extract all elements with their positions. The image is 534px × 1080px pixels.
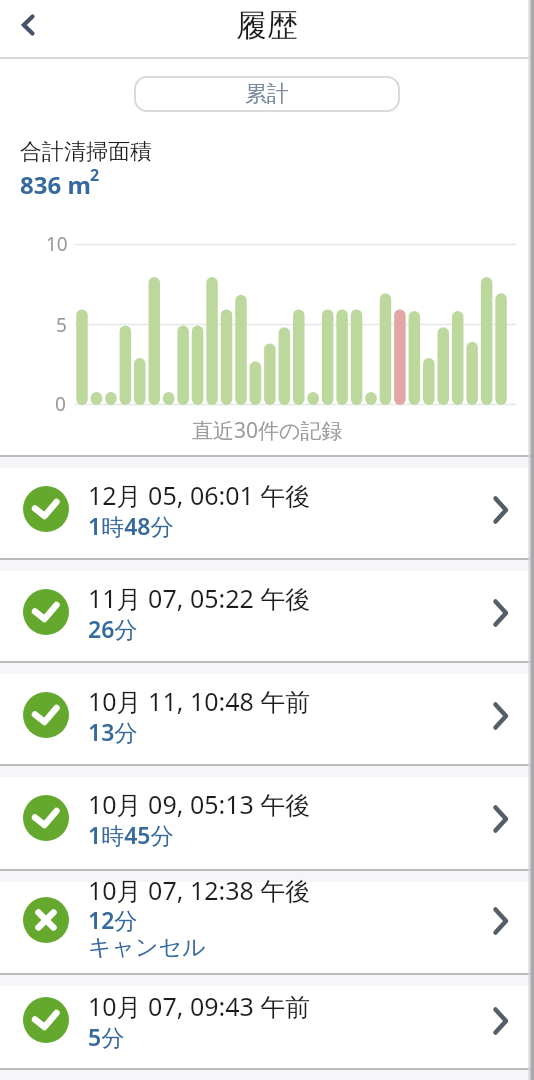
staticText: 5 [56, 312, 67, 338]
button[interactable]: 12月 05, 06:01 午後 [0, 457, 534, 558]
button[interactable]: 10月 11, 10:48 午前 [0, 663, 534, 764]
staticText: 直近30件の記録 [192, 416, 343, 444]
button[interactable]: 10月 07, 12:38 午後 [0, 869, 534, 973]
button[interactable]: 10月 07, 09:43 午前 [0, 975, 534, 1068]
staticText: 12月 05, 06:01 午後 [88, 478, 311, 512]
staticText: 11月 07, 05:22 午後 [88, 581, 311, 615]
staticText: 13分 [88, 716, 138, 746]
staticText: 1時45分 [88, 819, 174, 849]
button[interactable]: 10月 09, 05:13 午後 [0, 766, 534, 869]
staticText: 10月 11, 10:48 午前 [88, 684, 311, 718]
staticText: 10月 09, 05:13 午後 [88, 787, 311, 821]
staticText: 5分 [88, 1021, 125, 1051]
staticText: 履歴 [236, 6, 298, 45]
button[interactable] [0, 0, 56, 57]
button[interactable]: 11月 07, 05:22 午後 [0, 560, 534, 661]
button[interactable]: 累計 [134, 76, 400, 112]
staticText: 0 [55, 391, 66, 417]
staticText: 10月 07, 12:38 午後 [88, 873, 311, 907]
staticText: キャンセル [88, 933, 206, 961]
staticText: 836 m [20, 168, 91, 201]
staticText: 10 [46, 231, 68, 257]
staticText: 12分 [88, 904, 138, 934]
staticText: 累計 [245, 80, 289, 108]
staticText: 10月 07, 09:43 午前 [88, 989, 311, 1023]
staticText: 26分 [88, 613, 138, 643]
staticText: 2 [90, 164, 100, 186]
staticText: 合計清掃面積 [20, 138, 152, 166]
staticText: 1時48分 [88, 510, 174, 540]
